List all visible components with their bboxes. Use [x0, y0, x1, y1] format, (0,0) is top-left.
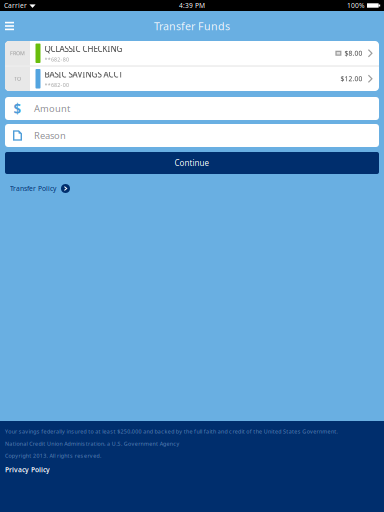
staticText: $12.00 [340, 74, 362, 83]
staticText: $ [13, 100, 21, 117]
button[interactable]: Menu [0, 15, 22, 37]
staticText: $8.00 [344, 49, 362, 58]
staticText: **682-00 [44, 81, 69, 88]
staticText: Your savings federally insured to at lea… [5, 428, 338, 435]
staticText: QCLASSIC CHECKING [44, 44, 122, 54]
button[interactable]: Reason [5, 124, 379, 147]
button[interactable]: FROM [5, 41, 379, 65]
button[interactable]: Transfer Policy [0, 180, 70, 197]
staticText: National Credit Union Administration, a … [5, 440, 180, 447]
staticText: Transfer Funds [154, 19, 230, 33]
staticText: TO [14, 75, 21, 82]
staticText: Amount [34, 102, 70, 115]
staticText: BASIC SAVINGS ACCT [44, 69, 122, 80]
staticText: Privacy Policy [5, 465, 50, 474]
staticText: Continue [174, 158, 209, 168]
staticText: **682-80 [44, 56, 69, 63]
staticText: FROM [10, 50, 25, 57]
staticText: 4:39 PM [179, 1, 205, 10]
staticText: 100% [347, 1, 365, 10]
staticText: Reason [34, 129, 66, 142]
staticText: Carrier [4, 1, 27, 10]
staticText: Transfer Policy [10, 184, 56, 193]
button[interactable]: Continue [5, 152, 379, 174]
button[interactable]: TO [5, 66, 379, 91]
staticText: Copyright 2013. All rights reserved. [5, 452, 101, 459]
button[interactable]: Privacy Policy [5, 459, 56, 477]
button[interactable]: $ [5, 97, 379, 120]
